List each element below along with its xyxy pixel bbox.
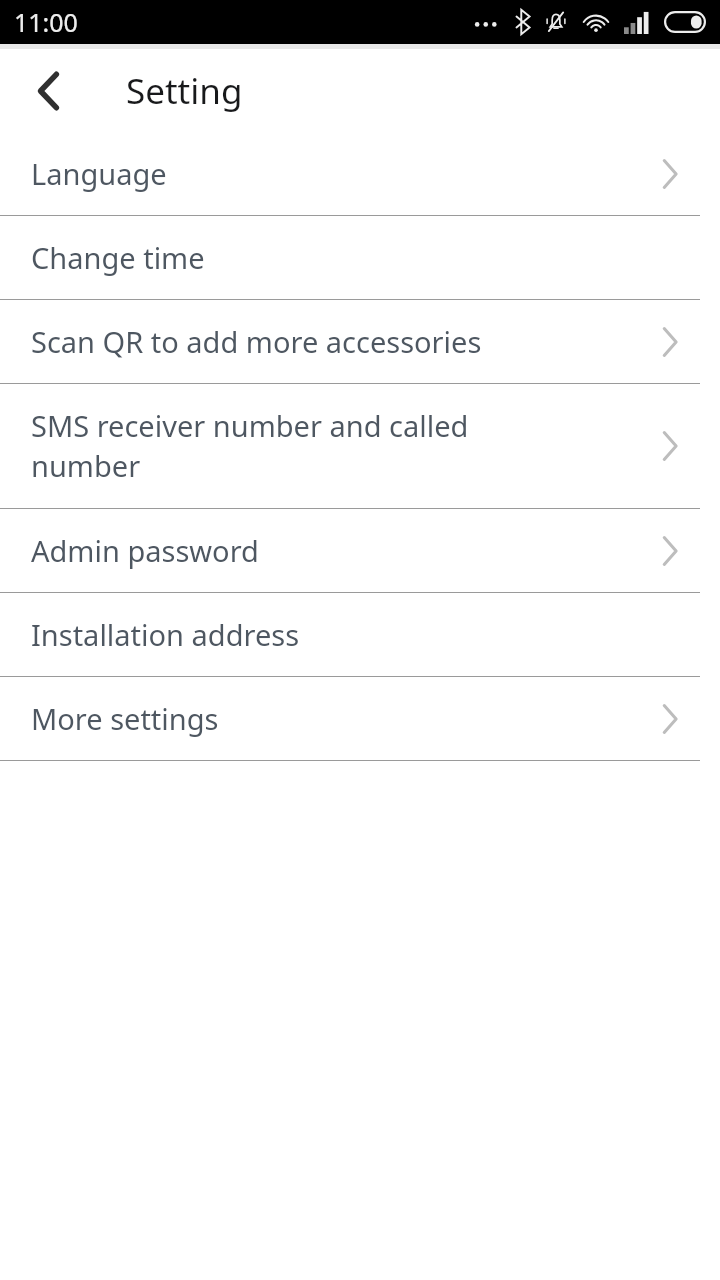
button[interactable]: Installation address <box>0 593 720 676</box>
staticText: Scan QR to add more accessories <box>31 322 482 361</box>
button[interactable]: Back <box>20 63 76 119</box>
staticText: SMS receiver number and called number <box>31 406 493 486</box>
staticText: Language <box>31 154 167 193</box>
staticText: Setting <box>126 67 243 115</box>
staticText: Change time <box>31 238 205 277</box>
button[interactable]: More settings <box>0 677 720 760</box>
staticText: 11:00 <box>14 5 78 39</box>
button[interactable]: Admin password <box>0 509 720 592</box>
staticText: Admin password <box>31 531 259 570</box>
staticText: More settings <box>31 699 219 738</box>
button[interactable]: Change time <box>0 216 720 299</box>
button[interactable]: SMS receiver number and called number <box>0 384 720 508</box>
button[interactable]: Scan QR to add more accessories <box>0 300 720 383</box>
staticText: Installation address <box>31 615 300 654</box>
button[interactable]: Language <box>0 132 720 215</box>
